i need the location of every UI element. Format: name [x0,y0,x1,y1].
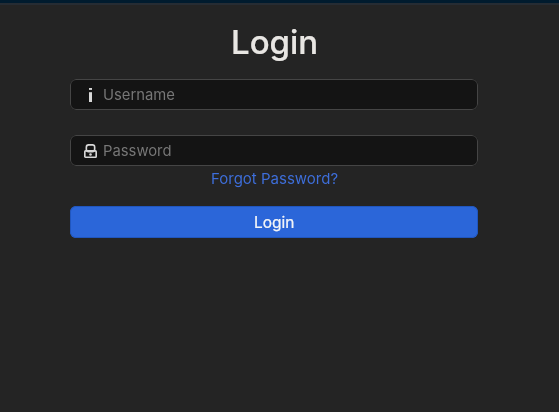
staticText: Login [231,22,319,62]
staticText: Login [254,213,295,232]
button[interactable]: Password field [70,135,478,166]
staticText: Forgot Password? [211,169,339,187]
staticText: Username [103,86,175,104]
button[interactable]: Login [70,206,478,238]
staticText: Password [103,142,172,160]
button[interactable]: Forgot Password? [211,169,339,187]
button[interactable]: Username field [70,79,478,110]
